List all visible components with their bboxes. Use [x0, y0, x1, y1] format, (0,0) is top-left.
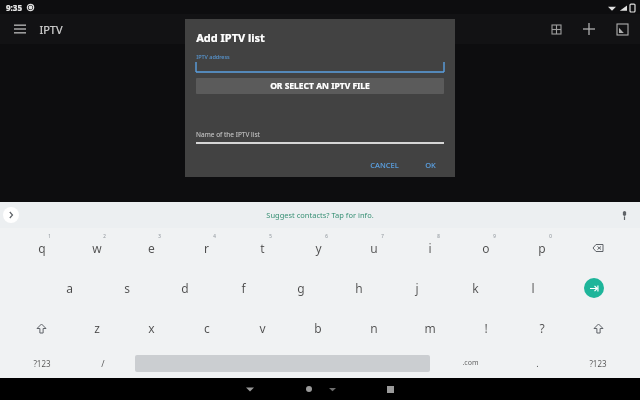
staticText: 2: [103, 233, 106, 239]
button[interactable]: OK: [419, 157, 442, 173]
staticText: 9:35: [6, 2, 22, 13]
staticText: ?: [539, 320, 545, 336]
button[interactable]: ?: [514, 308, 570, 348]
staticText: ?123: [33, 358, 51, 369]
staticText: p: [538, 240, 546, 256]
button[interactable]: Next field: [562, 268, 626, 308]
staticText: /: [101, 357, 105, 369]
button[interactable]: s: [98, 268, 156, 308]
button[interactable]: l: [504, 268, 562, 308]
staticText: 3: [158, 233, 161, 239]
staticText: 0: [549, 233, 552, 239]
button[interactable]: 7: [346, 228, 402, 268]
button[interactable]: OR SELECT AN IPTV FILE: [196, 78, 444, 94]
button[interactable]: Suggest contacts? Tap for info.: [266, 210, 374, 220]
button[interactable]: 8: [402, 228, 458, 268]
button[interactable]: Open navigation menu: [10, 19, 30, 39]
button[interactable]: g: [272, 268, 330, 308]
button[interactable]: Shift: [570, 308, 626, 348]
staticText: j: [415, 280, 419, 296]
staticText: 6: [325, 233, 328, 239]
button[interactable]: ?123: [566, 348, 630, 378]
staticText: ?123: [589, 358, 607, 369]
staticText: k: [472, 280, 479, 296]
staticText: s: [124, 280, 130, 296]
button[interactable]: x: [124, 308, 179, 348]
staticText: Name of the IPTV list: [196, 130, 260, 139]
button[interactable]: d: [156, 268, 214, 308]
staticText: m: [424, 320, 436, 336]
button[interactable]: !: [458, 308, 514, 348]
staticText: q: [38, 240, 46, 256]
button[interactable]: m: [402, 308, 458, 348]
staticText: Suggest contacts? Tap for info.: [266, 210, 374, 220]
button[interactable]: Voice input: [616, 207, 632, 223]
staticText: i: [428, 240, 432, 256]
staticText: n: [370, 320, 378, 336]
button[interactable]: v: [234, 308, 290, 348]
staticText: w: [92, 240, 102, 256]
staticText: 9: [493, 233, 496, 239]
button[interactable]: 1: [14, 228, 69, 268]
button[interactable]: f: [214, 268, 272, 308]
button[interactable]: Shift: [14, 308, 69, 348]
staticText: 4: [213, 233, 216, 239]
button[interactable]: c: [179, 308, 234, 348]
staticText: Add IPTV list: [196, 30, 265, 45]
staticText: l: [531, 280, 535, 296]
button[interactable]: 5: [234, 228, 290, 268]
staticText: !: [484, 320, 488, 336]
button[interactable]: b: [290, 308, 346, 348]
button[interactable]: Assistant: [324, 381, 340, 397]
button[interactable]: Home: [300, 380, 318, 398]
button[interactable]: j: [388, 268, 446, 308]
button[interactable]: /: [74, 348, 132, 378]
button[interactable]: Backspace: [570, 228, 626, 268]
button[interactable]: Add IPTV list: [579, 19, 599, 39]
staticText: z: [94, 320, 100, 336]
staticText: h: [355, 280, 363, 296]
button[interactable]: Toggle view: [546, 19, 566, 39]
staticText: OK: [425, 160, 436, 170]
staticText: IPTV: [39, 22, 63, 37]
button[interactable]: 9: [458, 228, 514, 268]
button[interactable]: 4: [179, 228, 234, 268]
staticText: 5: [269, 233, 272, 239]
button[interactable]: n: [346, 308, 402, 348]
button[interactable]: Hide keyboard: [240, 379, 260, 399]
staticText: x: [148, 320, 155, 336]
button[interactable]: ?123: [10, 348, 74, 378]
staticText: b: [314, 320, 322, 336]
staticText: g: [297, 280, 305, 296]
button[interactable]: .: [508, 348, 566, 378]
staticText: r: [204, 240, 209, 256]
staticText: IPTV address: [196, 53, 230, 60]
staticText: t: [260, 240, 265, 256]
staticText: 8: [437, 233, 440, 239]
staticText: c: [204, 320, 210, 336]
staticText: y: [315, 240, 322, 256]
button[interactable]: CANCEL: [364, 157, 405, 173]
button[interactable]: .com: [433, 348, 508, 378]
staticText: f: [241, 280, 246, 296]
button[interactable]: 0: [514, 228, 570, 268]
staticText: 1: [48, 233, 51, 239]
button[interactable]: a: [40, 268, 98, 308]
button[interactable]: z: [69, 308, 124, 348]
staticText: e: [148, 240, 155, 256]
button[interactable]: h: [330, 268, 388, 308]
staticText: OR SELECT AN IPTV FILE: [270, 80, 370, 92]
staticText: d: [181, 280, 189, 296]
staticText: .: [536, 357, 539, 369]
button[interactable]: k: [446, 268, 504, 308]
staticText: CANCEL: [370, 160, 399, 170]
staticText: a: [66, 280, 73, 296]
button[interactable]: 3: [124, 228, 179, 268]
button[interactable]: 6: [290, 228, 346, 268]
button[interactable]: Recent apps: [380, 379, 400, 399]
button[interactable]: Cast: [612, 19, 632, 39]
button[interactable]: 2: [69, 228, 124, 268]
button[interactable]: Expand suggestions: [3, 207, 19, 223]
staticText: .com: [462, 358, 479, 368]
